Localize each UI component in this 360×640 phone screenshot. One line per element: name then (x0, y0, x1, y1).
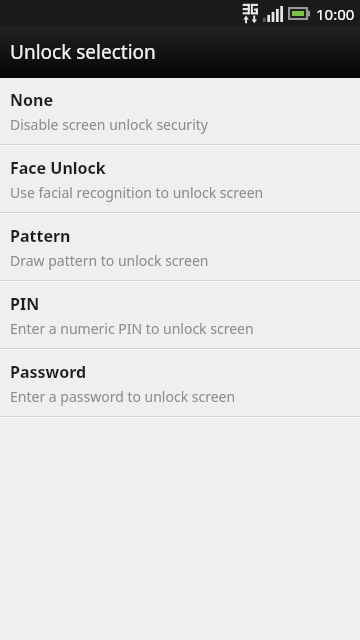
staticText: 10:00 (316, 4, 355, 24)
button[interactable]: None (0, 78, 360, 146)
button[interactable]: Face Unlock (0, 146, 360, 214)
staticText: PIN (10, 293, 40, 315)
staticText: Disable screen unlock security (10, 115, 208, 134)
staticText: Face Unlock (10, 157, 106, 179)
staticText: None (10, 89, 53, 111)
button[interactable]: Password (0, 350, 360, 418)
button[interactable]: PIN (0, 282, 360, 350)
staticText: Use facial recognition to unlock screen (10, 183, 264, 202)
staticText: Enter a password to unlock screen (10, 387, 236, 406)
staticText: Password (10, 361, 87, 383)
staticText: Pattern (10, 225, 71, 247)
staticText: Unlock selection (10, 39, 156, 65)
staticText: Draw pattern to unlock screen (10, 251, 209, 270)
staticText: Enter a numeric PIN to unlock screen (10, 319, 254, 338)
button[interactable]: Pattern (0, 214, 360, 282)
